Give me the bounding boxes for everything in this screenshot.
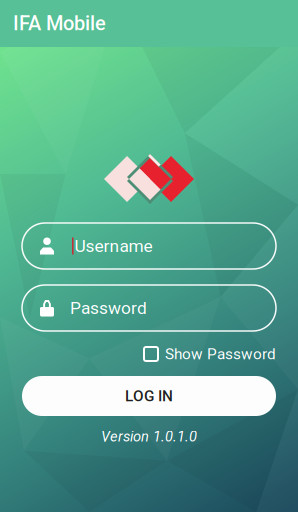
staticText: Username [75, 236, 153, 256]
button[interactable]: Show Password [0, 347, 298, 361]
staticText: LOG IN [125, 387, 173, 405]
staticText: IFA Mobile [13, 12, 106, 35]
button[interactable]: LOG IN [22, 376, 276, 416]
staticText: Version 1.0.1.0 [101, 428, 197, 445]
staticText: Show Password [165, 345, 276, 363]
staticText: Password [70, 298, 147, 318]
